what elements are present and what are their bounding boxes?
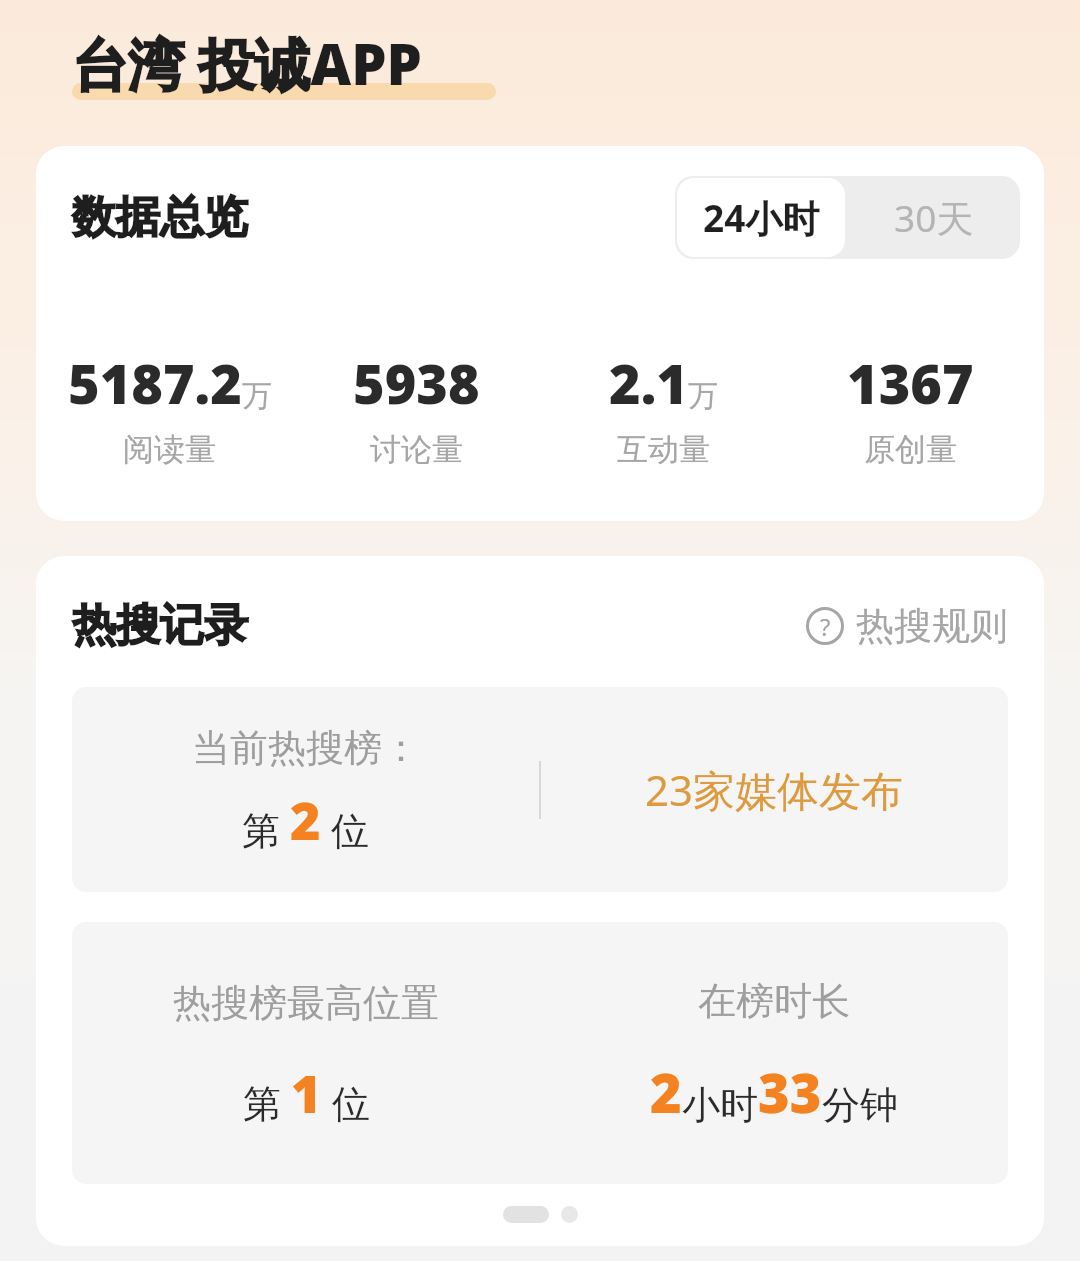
staticText: 阅读量 (123, 430, 216, 469)
staticText: 在榜时长 (698, 977, 850, 1025)
staticText: 数据总览 (72, 190, 248, 245)
staticText: 第 (242, 807, 280, 855)
staticText: 1 (291, 1057, 322, 1128)
staticText: 万 (242, 377, 272, 415)
staticText: 5938 (353, 346, 480, 420)
staticText: 30天 (894, 192, 974, 243)
staticText: 当前热搜榜： (192, 724, 420, 772)
staticText: 2 (650, 1055, 682, 1129)
staticText: 分钟 (822, 1081, 898, 1129)
staticText: 2.1 (609, 346, 688, 420)
staticText: 万 (688, 377, 718, 415)
staticText: 台湾 投诚APP (72, 25, 422, 101)
staticText: 小时 (682, 1081, 758, 1129)
staticText: 5187.2 (68, 346, 242, 420)
button[interactable]: 热搜榜最高位置 (72, 922, 1008, 1184)
staticText: 热搜规则 (856, 602, 1008, 650)
staticText: 热搜记录 (72, 598, 248, 653)
button[interactable]: 24小时 (677, 178, 845, 257)
staticText: 33 (758, 1055, 822, 1129)
staticText: 位 (332, 1080, 370, 1128)
staticText: 2 (290, 784, 321, 855)
staticText: ? (820, 610, 831, 643)
button[interactable]: 30天 (847, 176, 1020, 259)
staticText: 1367 (847, 346, 974, 420)
button[interactable]: ? (806, 602, 1008, 650)
staticText: 互动量 (617, 430, 710, 469)
staticText: 位 (331, 807, 369, 855)
staticText: 讨论量 (370, 430, 463, 469)
staticText: 23家媒体发布 (645, 761, 904, 818)
staticText: 热搜榜最高位置 (173, 979, 439, 1027)
button[interactable]: 当前热搜榜： (72, 687, 1008, 892)
staticText: 24小时 (703, 192, 820, 243)
staticText: 第 (243, 1080, 281, 1128)
staticText: 原创量 (864, 430, 957, 469)
